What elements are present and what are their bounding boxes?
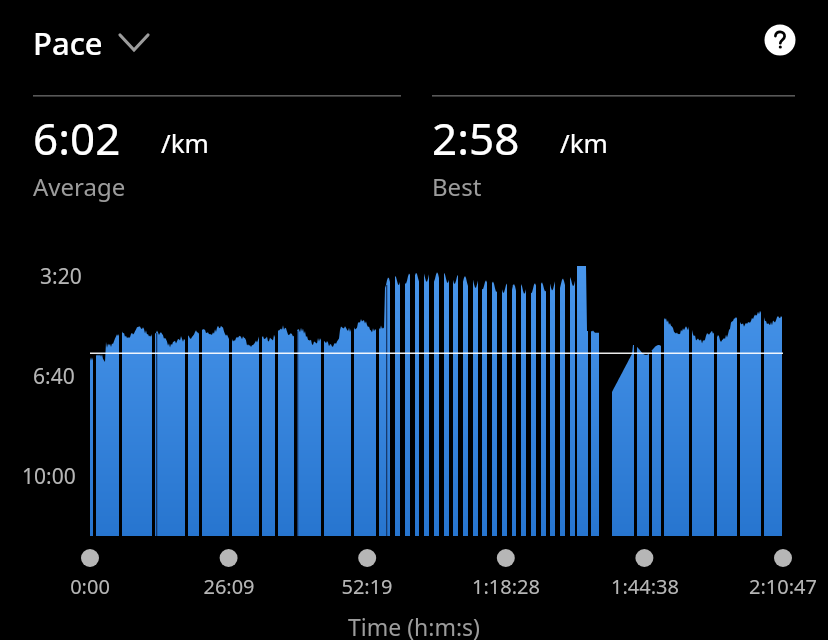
staticText: 10:00: [22, 462, 76, 491]
staticText: 26:09: [159, 573, 299, 603]
staticText: 2:10:47: [713, 573, 828, 603]
staticText: 1:18:28: [436, 573, 576, 603]
staticText: /km: [161, 125, 209, 160]
button[interactable]: Pace: [26, 14, 178, 70]
button[interactable]: 2:58: [432, 108, 800, 206]
staticText: 0:00: [20, 573, 160, 603]
staticText: Average: [33, 170, 126, 203]
button[interactable]: 6:02: [33, 108, 401, 206]
staticText: Best: [432, 170, 482, 203]
staticText: 6:40: [33, 362, 75, 391]
staticText: 52:19: [297, 573, 437, 603]
staticText: Pace: [33, 22, 103, 64]
staticText: 2:58: [432, 108, 520, 168]
button[interactable]: Help: [758, 18, 802, 62]
staticText: 3:20: [40, 262, 82, 291]
staticText: /km: [560, 125, 608, 160]
staticText: 6:02: [33, 108, 121, 168]
staticText: 1:44:38: [575, 573, 715, 603]
staticText: Time (h:m:s): [0, 611, 828, 640]
